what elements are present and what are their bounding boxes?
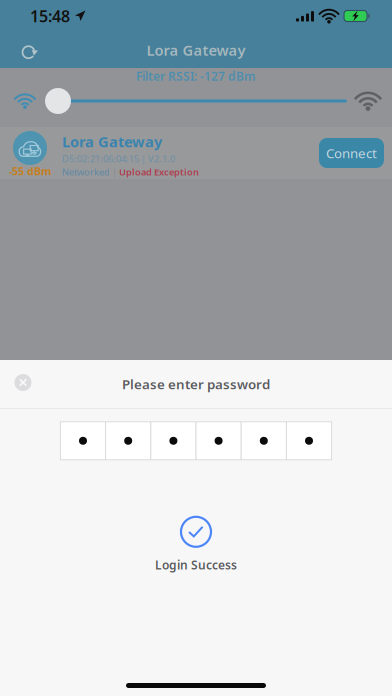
staticText: Connect bbox=[326, 144, 377, 162]
staticText: Please enter password bbox=[122, 375, 270, 393]
staticText: Networked bbox=[62, 166, 110, 178]
button[interactable]: Close bbox=[0, 359, 46, 405]
staticText: -55 dBm bbox=[9, 164, 51, 178]
staticText: Lora Gateway bbox=[62, 132, 162, 151]
staticText: | bbox=[112, 166, 117, 178]
staticText: 15:48 bbox=[30, 5, 70, 27]
button[interactable]: Connect bbox=[319, 138, 384, 168]
button[interactable]: Refresh bbox=[8, 30, 52, 70]
staticText: Filter RSSI: -127 dBm bbox=[136, 68, 256, 84]
staticText: Lora Gateway bbox=[146, 40, 245, 60]
staticText: D5:02:21:06:04:15 | V2.1.0 bbox=[62, 152, 175, 165]
staticText: Upload Exception bbox=[119, 166, 199, 178]
staticText: Login Success bbox=[155, 557, 237, 573]
